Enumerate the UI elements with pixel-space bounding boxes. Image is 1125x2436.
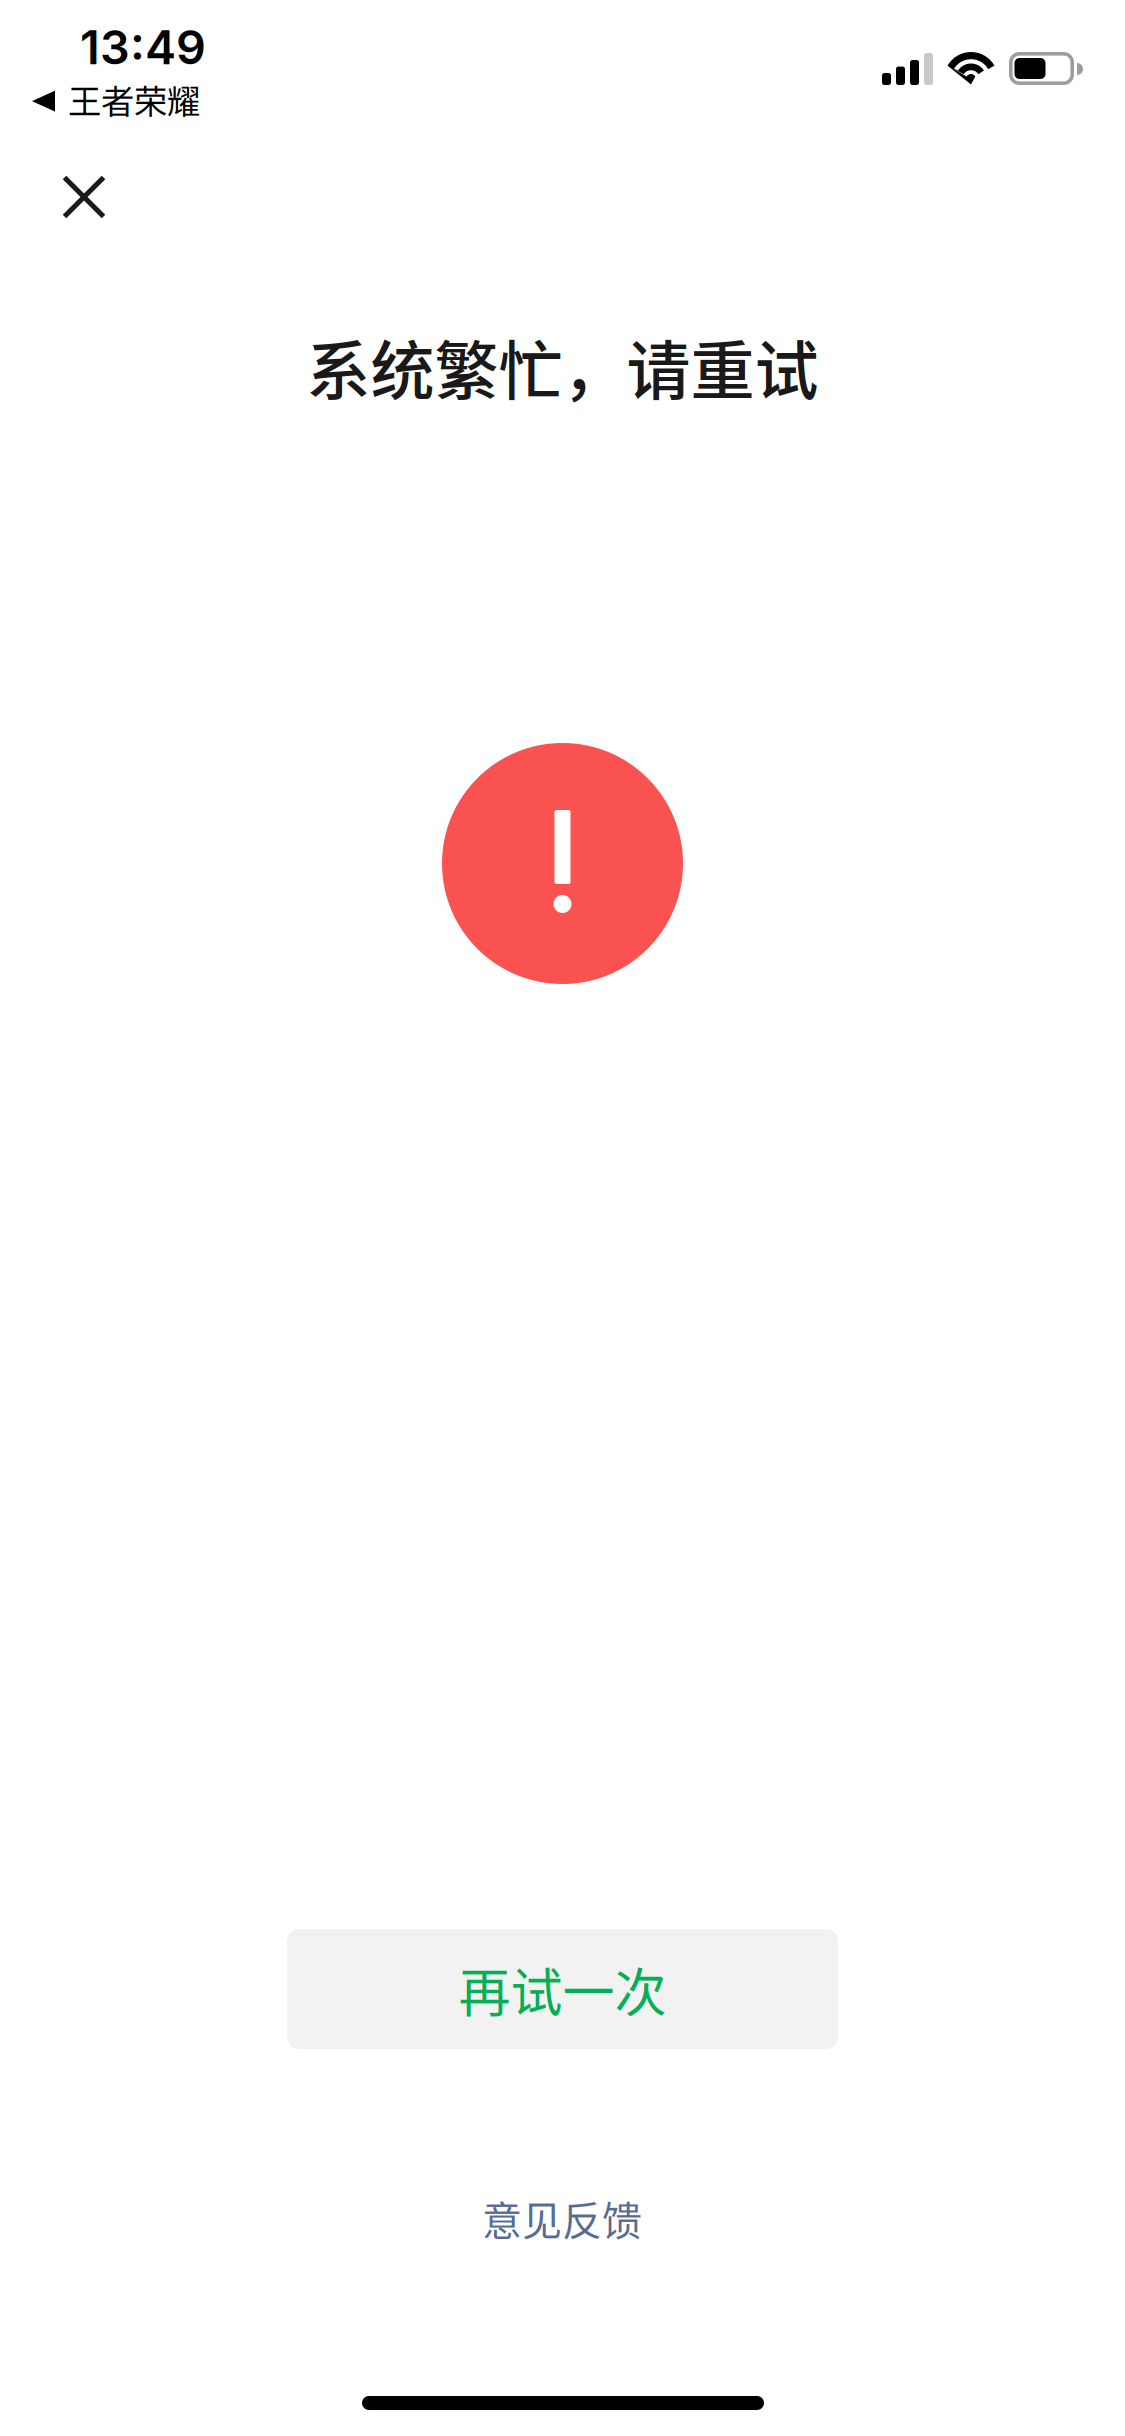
button[interactable]: 关闭: [37, 150, 131, 244]
button[interactable]: 再试一次: [287, 1929, 838, 2049]
staticText: 王者荣耀: [68, 75, 200, 123]
staticText: 再试一次: [458, 1951, 666, 2027]
staticText: 系统繁忙，请重试: [306, 320, 818, 412]
staticText: 13:49: [80, 19, 206, 75]
button[interactable]: 王者荣耀: [32, 69, 200, 129]
staticText: 意见反馈: [482, 2189, 642, 2247]
button[interactable]: 意见反馈: [412, 2183, 712, 2253]
